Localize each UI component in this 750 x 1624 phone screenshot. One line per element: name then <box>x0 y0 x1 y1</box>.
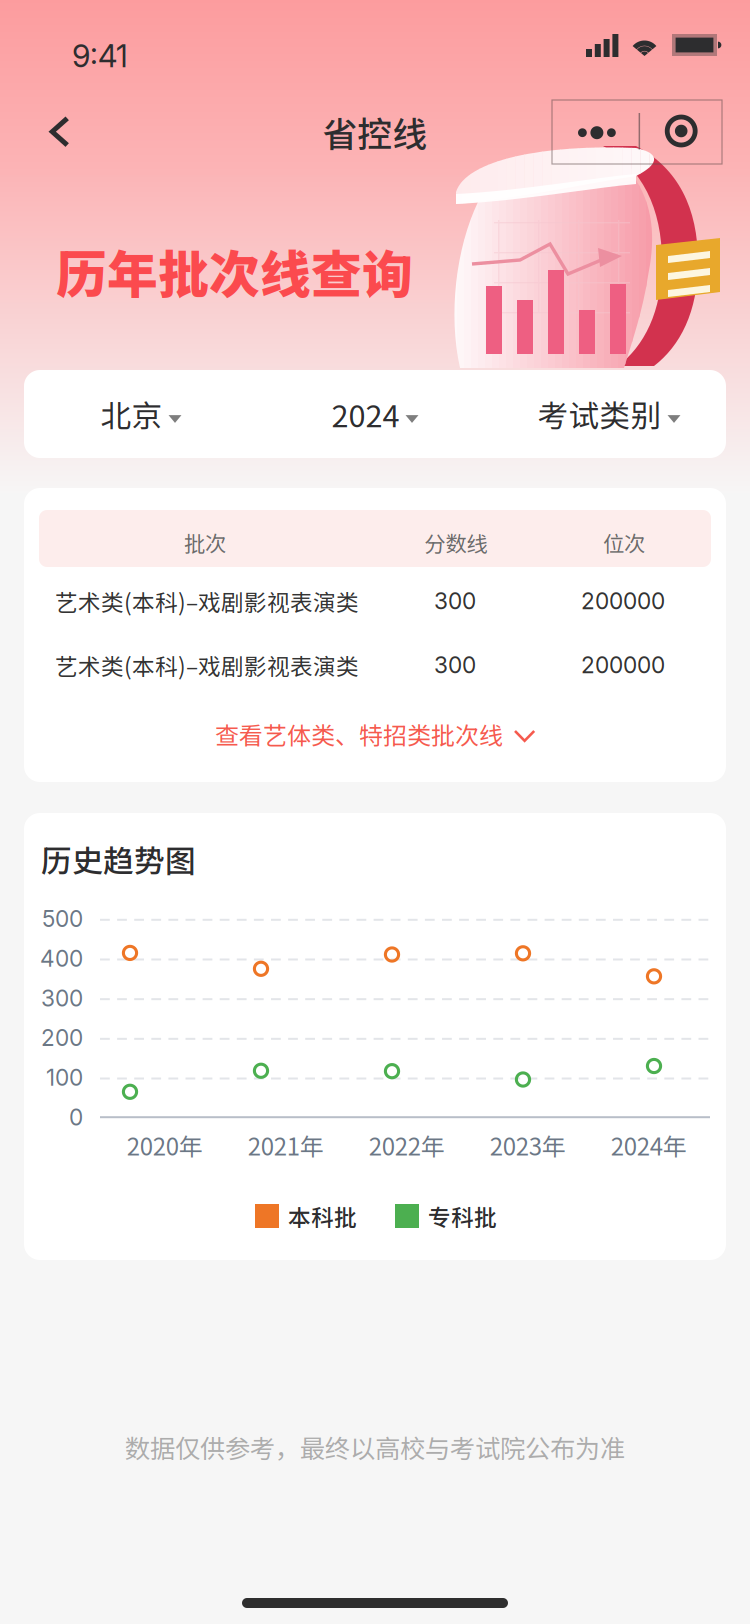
staticText: 300 <box>41 984 83 1012</box>
button[interactable]: 查看艺体类、特招类批次线 <box>24 697 726 771</box>
staticText: 2024年 <box>611 1128 687 1162</box>
staticText: 300 <box>434 651 476 679</box>
staticText: 省控线 <box>322 107 427 157</box>
staticText: 艺术类(本科)–戏剧影视表演类 <box>55 585 359 617</box>
staticText: 批次 <box>184 527 226 558</box>
staticText: 专科批 <box>428 1200 497 1232</box>
staticText: 北京 <box>100 392 162 436</box>
staticText: 2023年 <box>490 1128 566 1162</box>
staticText: 本科批 <box>288 1200 357 1232</box>
staticText: 0 <box>69 1103 83 1131</box>
staticText: 200000 <box>581 651 665 679</box>
staticText: 500 <box>42 905 83 932</box>
staticText: 200000 <box>581 587 665 615</box>
staticText: 300 <box>434 587 476 615</box>
staticText: 考试类别 <box>537 392 661 436</box>
staticText: 历年批次线查询 <box>56 234 413 308</box>
staticText: 数据仅供参考，最终以高校与考试院公布为准 <box>125 1429 625 1465</box>
staticText: 9:41 <box>72 37 128 74</box>
button[interactable]: 2024 <box>258 370 492 458</box>
staticText: 2024 <box>331 392 399 436</box>
staticText: 400 <box>40 945 83 972</box>
staticText: 位次 <box>603 527 645 558</box>
staticText: 历史趋势图 <box>41 837 196 881</box>
button[interactable]: Back <box>22 97 96 167</box>
button[interactable]: More options <box>552 100 722 164</box>
staticText: 2022年 <box>369 1128 445 1162</box>
button[interactable]: 考试类别 <box>492 370 726 458</box>
staticText: 200 <box>41 1024 83 1051</box>
staticText: 分数线 <box>424 527 487 558</box>
staticText: 2021年 <box>248 1128 324 1162</box>
staticText: 100 <box>46 1064 83 1091</box>
staticText: 艺术类(本科)–戏剧影视表演类 <box>55 649 359 681</box>
button[interactable]: 北京 <box>24 370 258 458</box>
staticText: 查看艺体类、特招类批次线 <box>215 717 503 751</box>
staticText: 2020年 <box>127 1128 203 1162</box>
